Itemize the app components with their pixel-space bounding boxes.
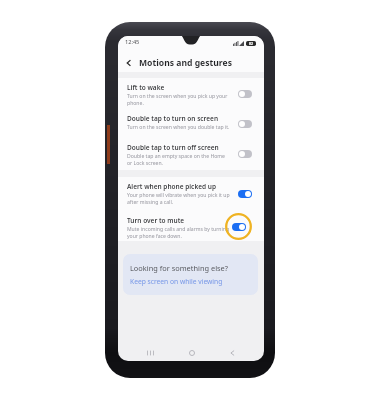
button[interactable]: Toggle [238,190,252,198]
button[interactable]: Toggle [238,150,252,158]
button[interactable]: Double tap to turn on screen [118,109,264,138]
staticText: Double tap an empty space on the Home or… [127,153,231,167]
staticText: Double tap to turn on screen [127,114,219,123]
button[interactable]: Turn over to mute [118,211,264,241]
button[interactable]: Toggle [232,223,246,231]
button[interactable]: Back [122,56,136,70]
staticText: 82 [249,41,253,46]
staticText: Alert when phone picked up [127,182,216,191]
button[interactable]: Alert when phone picked up [118,177,264,211]
staticText: 12:45 [125,38,140,46]
staticText: Turn on the screen when you double tap i… [127,124,230,131]
button[interactable]: Home [185,346,198,359]
staticText: Motions and gestures [139,57,232,69]
staticText: Double tap to turn off screen [127,143,219,152]
button[interactable]: Toggle [238,120,252,128]
button[interactable]: Toggle [238,90,252,98]
button[interactable]: Lift to wake [118,78,264,109]
staticText: Your phone will vibrate when you pick it… [127,192,231,206]
staticText: Lift to wake [127,83,165,92]
staticText: Mute incoming calls and alarms by turnin… [127,226,231,240]
staticText: Turn on the screen when you pick up your… [127,93,231,107]
staticText: Keep screen on while viewing [130,277,223,286]
button[interactable]: Back [226,346,239,359]
button[interactable]: Recent apps [144,346,157,359]
staticText: Turn over to mute [127,216,185,225]
button[interactable]: Double tap to turn off screen [118,138,264,169]
staticText: Looking for something else? [130,263,228,273]
button[interactable]: Looking for something else? [123,254,258,295]
